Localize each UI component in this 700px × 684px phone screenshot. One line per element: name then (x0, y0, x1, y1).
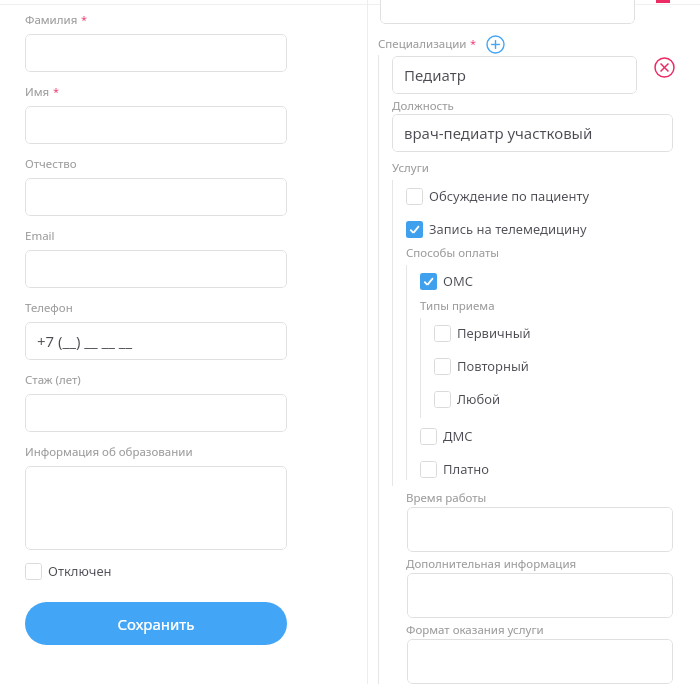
button[interactable]: Обсуждение по пациенту (406, 187, 590, 205)
button[interactable] (407, 573, 673, 618)
staticText: Время работы (406, 490, 487, 506)
staticText: * (81, 12, 88, 27)
staticText: Информация об образовании (25, 444, 193, 460)
button[interactable]: Педиатр (392, 56, 637, 94)
staticText: ОМС (443, 272, 474, 290)
staticText: +7 (__) __ __ __ (37, 331, 133, 351)
staticText: Стаж (лет) (25, 372, 81, 388)
staticText: Способы оплаты (406, 245, 500, 261)
staticText: Отключен (48, 562, 112, 580)
staticText: Типы приема (420, 298, 495, 314)
staticText: Запись на телемедицину (429, 220, 587, 238)
button[interactable] (25, 250, 287, 288)
staticText: * (53, 84, 60, 99)
button[interactable]: Запись на телемедицину (406, 220, 587, 238)
staticText: Дополнительная информация (406, 556, 577, 572)
button[interactable] (407, 507, 673, 552)
staticText: Телефон (25, 300, 73, 316)
staticText: * (470, 36, 477, 51)
staticText: ДМС (443, 427, 473, 445)
staticText: Имя (25, 84, 50, 100)
button[interactable] (407, 639, 673, 684)
button[interactable] (25, 466, 287, 550)
button[interactable] (25, 106, 287, 144)
staticText: Email (25, 228, 55, 244)
button[interactable]: Любой (434, 390, 501, 408)
button[interactable]: ОМС (420, 272, 474, 290)
staticText: Первичный (457, 324, 531, 342)
staticText: Платно (443, 460, 490, 478)
staticText: Любой (457, 390, 501, 408)
staticText: Отчество (25, 156, 77, 172)
staticText: Педиатр (404, 65, 466, 85)
button[interactable]: Отключен (25, 562, 112, 580)
button[interactable]: ДМС (420, 427, 473, 445)
button[interactable]: Повторный (434, 357, 529, 375)
staticText: Повторный (457, 357, 529, 375)
button[interactable]: Удалить специализацию (653, 56, 675, 78)
staticText: Должность (392, 98, 454, 114)
button[interactable] (25, 394, 287, 432)
staticText: Формат оказания услуги (406, 622, 544, 638)
button[interactable] (25, 178, 287, 216)
button[interactable] (25, 34, 287, 72)
staticText: Специализации (378, 36, 467, 52)
staticText: Услуги (392, 160, 429, 176)
button[interactable]: +7 (__) __ __ __ (25, 322, 287, 360)
staticText: врач-педиатр участковый (404, 123, 593, 143)
button[interactable]: Добавить специализацию (485, 34, 505, 54)
button[interactable]: Сохранить (25, 602, 287, 645)
staticText: Обсуждение по пациенту (429, 187, 590, 205)
button[interactable]: Первичный (434, 324, 531, 342)
staticText: Сохранить (117, 614, 195, 634)
button[interactable]: Платно (420, 460, 490, 478)
staticText: Фамилия (25, 12, 78, 28)
button[interactable]: врач-педиатр участковый (392, 114, 673, 152)
